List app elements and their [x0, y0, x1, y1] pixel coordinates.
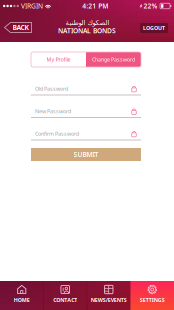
- staticText: SETTINGS: [140, 296, 165, 304]
- button[interactable]: BACK: [4, 22, 32, 33]
- staticText: Old Password: [35, 85, 68, 92]
- staticText: BACK: [12, 23, 28, 32]
- staticText: CONTACT: [53, 296, 77, 304]
- staticText: SUBMIT: [73, 150, 98, 159]
- button[interactable]: SUBMIT: [31, 148, 141, 161]
- button[interactable]: Change Password: [86, 52, 141, 67]
- button[interactable]: HOME: [0, 281, 43, 310]
- staticText: Change Password: [92, 56, 135, 63]
- staticText: NEWS/EVENTS: [91, 296, 127, 304]
- staticText: الصكوك الوطنية: [65, 19, 109, 26]
- staticText: New Password: [35, 108, 71, 115]
- staticText: LOGOUT: [143, 24, 165, 32]
- staticText: HOME: [14, 296, 30, 304]
- button[interactable]: LOGOUT: [140, 23, 168, 33]
- staticText: VIRGIN: [21, 2, 43, 10]
- staticText: NATIONAL BONDS: [58, 26, 116, 35]
- staticText: Confirm Password: [35, 130, 79, 137]
- button[interactable]: SETTINGS: [130, 281, 174, 310]
- staticText: My Profile: [46, 56, 70, 63]
- button[interactable]: NEWS/EVENTS: [87, 281, 130, 310]
- staticText: 22%: [143, 2, 157, 10]
- button[interactable]: CONTACT: [43, 281, 87, 310]
- button[interactable]: My Profile: [31, 52, 86, 67]
- staticText: 4:21 PM: [82, 2, 108, 10]
